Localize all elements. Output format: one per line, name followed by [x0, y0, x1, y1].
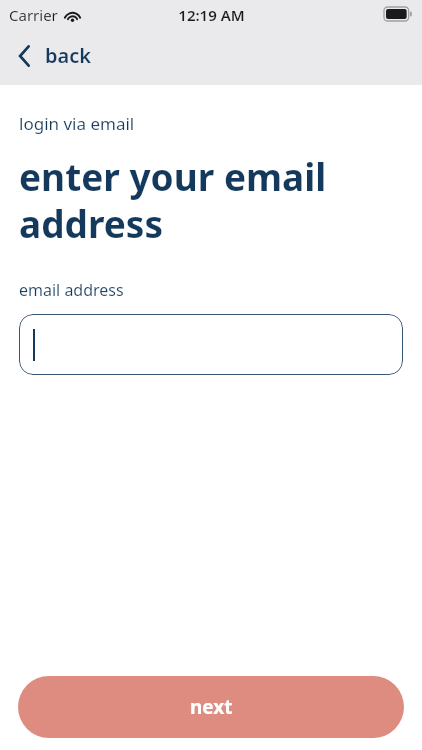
staticText: next [190, 694, 233, 720]
staticText: email address [19, 279, 124, 301]
staticText: enter your email address [19, 151, 327, 249]
staticText: login via email [19, 112, 135, 135]
staticText: back [45, 42, 92, 69]
staticText: Carrier [9, 5, 58, 25]
button[interactable]: next [18, 676, 404, 738]
staticText: 12:19 AM [178, 5, 245, 25]
button[interactable]: back [10, 36, 100, 75]
button[interactable]: email address input [19, 314, 403, 375]
